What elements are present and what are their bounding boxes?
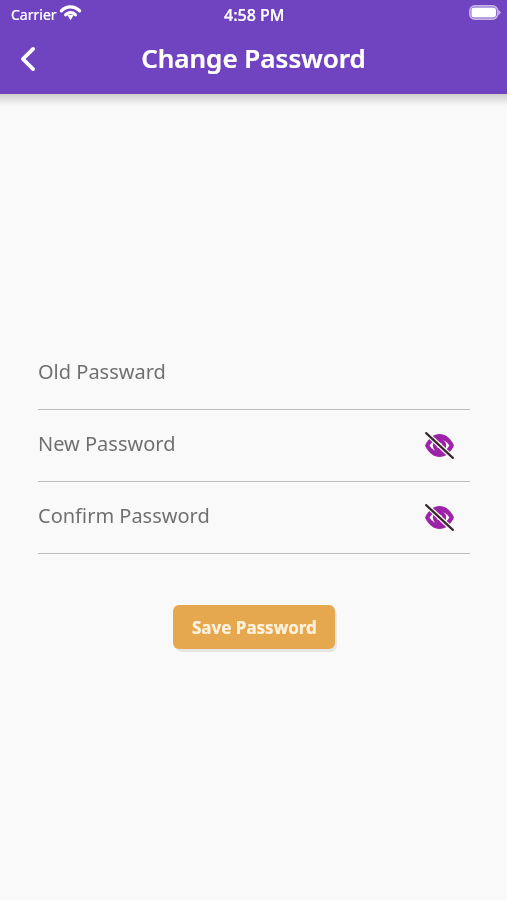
staticText: Old Passward bbox=[38, 358, 166, 385]
button[interactable]: Back bbox=[6, 37, 50, 81]
staticText: Change Password bbox=[0, 40, 507, 75]
button[interactable]: Toggle password visibility bbox=[419, 426, 460, 464]
staticText: Carrier bbox=[11, 5, 57, 24]
staticText: New Password bbox=[38, 430, 176, 457]
button[interactable]: Save Password bbox=[173, 605, 335, 649]
button[interactable]: Toggle password visibility bbox=[419, 498, 460, 536]
staticText: 4:58 PM bbox=[224, 4, 285, 26]
staticText: Confirm Password bbox=[38, 502, 210, 529]
staticText: Save Password bbox=[192, 616, 317, 639]
